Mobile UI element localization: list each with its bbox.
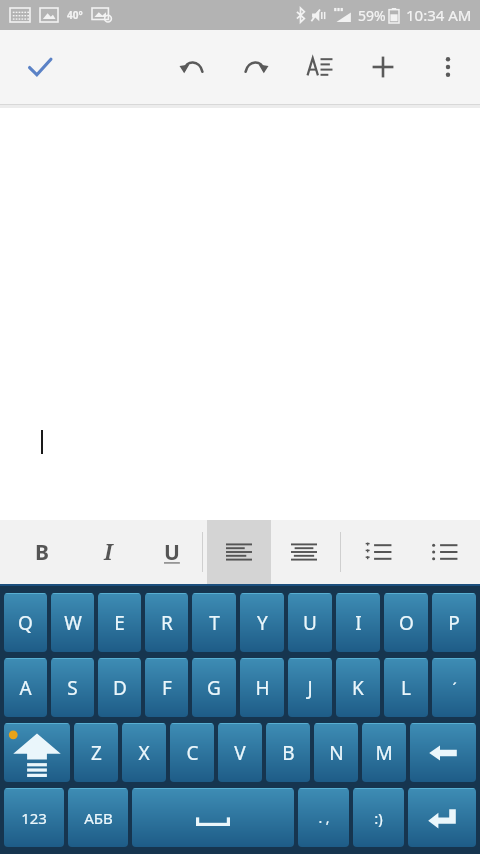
- button[interactable]: K: [336, 658, 380, 717]
- staticText: I: [355, 610, 362, 636]
- button[interactable]: N: [314, 723, 358, 782]
- staticText: R: [161, 610, 173, 636]
- button[interactable]: U: [288, 593, 332, 652]
- staticText: ´: [452, 678, 457, 698]
- staticText: 10:34 AM: [406, 5, 472, 25]
- staticText: 123: [21, 808, 47, 828]
- staticText: U: [303, 610, 317, 636]
- button[interactable]: Underline: [140, 520, 204, 584]
- button[interactable]: A: [4, 658, 47, 717]
- staticText: B: [35, 538, 49, 567]
- button[interactable]: O: [384, 593, 428, 652]
- button[interactable]: F: [145, 658, 188, 717]
- button[interactable]: W: [51, 593, 94, 652]
- staticText: 59%: [358, 6, 386, 25]
- button[interactable]: . ,: [298, 788, 349, 847]
- staticText: 40°: [67, 8, 83, 22]
- staticText: E: [114, 610, 125, 636]
- button[interactable]: Bulleted list: [412, 520, 476, 584]
- staticText: V: [234, 740, 246, 766]
- staticText: K: [352, 675, 364, 701]
- button[interactable]: H: [240, 658, 284, 717]
- button[interactable]: Space: [132, 788, 294, 847]
- button[interactable]: Z: [74, 723, 118, 782]
- staticText: F: [162, 675, 172, 701]
- button[interactable]: 123: [4, 788, 64, 847]
- button[interactable]: P: [432, 593, 476, 652]
- button[interactable]: Done: [12, 39, 68, 95]
- staticText: J: [307, 675, 313, 701]
- button[interactable]: Italic: [76, 520, 140, 584]
- button[interactable]: Text formatting: [298, 45, 342, 89]
- button[interactable]: Y: [240, 593, 284, 652]
- staticText: . ,: [318, 808, 330, 827]
- staticText: Q: [18, 610, 33, 636]
- button[interactable]: J: [288, 658, 332, 717]
- staticText: S: [67, 675, 78, 701]
- staticText: O: [399, 610, 414, 636]
- staticText: G: [207, 675, 221, 701]
- staticText: Z: [91, 740, 102, 766]
- staticText: X: [138, 740, 150, 766]
- button[interactable]: More options: [426, 45, 470, 89]
- button[interactable]: Align left: [207, 520, 271, 584]
- button[interactable]: :): [353, 788, 404, 847]
- button[interactable]: Bold: [10, 520, 74, 584]
- button[interactable]: R: [145, 593, 188, 652]
- button[interactable]: C: [170, 723, 214, 782]
- staticText: W: [64, 610, 82, 636]
- staticText: :): [374, 808, 383, 828]
- button[interactable]: Shift: [4, 723, 70, 782]
- button[interactable]: Q: [4, 593, 47, 652]
- button[interactable]: Backspace: [410, 723, 476, 782]
- button[interactable]: G: [192, 658, 236, 717]
- button[interactable]: [0, 108, 480, 520]
- staticText: L: [401, 675, 411, 701]
- button[interactable]: Undo: [170, 45, 214, 89]
- button[interactable]: V: [218, 723, 262, 782]
- staticText: C: [186, 740, 199, 766]
- staticText: M: [375, 740, 393, 766]
- button[interactable]: B: [266, 723, 310, 782]
- staticText: N: [329, 740, 344, 766]
- button[interactable]: M: [362, 723, 406, 782]
- button[interactable]: X: [122, 723, 166, 782]
- button[interactable]: E: [98, 593, 141, 652]
- button[interactable]: Numbered list: [346, 520, 410, 584]
- button[interactable]: Enter: [408, 788, 476, 847]
- staticText: Y: [257, 610, 268, 636]
- staticText: T: [209, 610, 220, 636]
- staticText: I: [104, 538, 113, 567]
- staticText: АБВ: [84, 808, 113, 828]
- button[interactable]: D: [98, 658, 141, 717]
- staticText: D: [113, 675, 127, 701]
- button[interactable]: ´: [432, 658, 476, 717]
- staticText: U: [164, 538, 180, 567]
- button[interactable]: Insert: [361, 45, 405, 89]
- staticText: B: [282, 740, 295, 766]
- button[interactable]: L: [384, 658, 428, 717]
- button[interactable]: Align center: [272, 520, 336, 584]
- button[interactable]: S: [51, 658, 94, 717]
- staticText: P: [448, 610, 460, 636]
- button[interactable]: I: [336, 593, 380, 652]
- button[interactable]: T: [192, 593, 236, 652]
- button[interactable]: Redo: [234, 45, 278, 89]
- button[interactable]: АБВ: [68, 788, 128, 847]
- staticText: A: [19, 675, 32, 701]
- staticText: H: [255, 675, 270, 701]
